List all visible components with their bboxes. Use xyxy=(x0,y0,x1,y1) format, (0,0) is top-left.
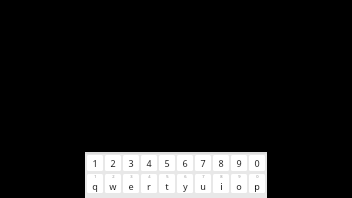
staticText: 7 xyxy=(202,174,205,179)
staticText: 3 xyxy=(128,157,134,169)
staticText: 2 xyxy=(110,157,116,169)
staticText: 8 xyxy=(220,174,223,179)
staticText: 7 xyxy=(200,157,206,169)
staticText: 6 xyxy=(182,157,188,169)
staticText: 5 xyxy=(166,174,169,179)
staticText: 9 xyxy=(236,157,242,169)
button[interactable]: e xyxy=(123,174,139,193)
staticText: r xyxy=(147,180,151,192)
staticText: y xyxy=(183,180,188,192)
button[interactable]: u xyxy=(195,174,211,193)
staticText: 2 xyxy=(112,174,115,179)
button[interactable]: r xyxy=(141,174,157,193)
staticText: 3 xyxy=(130,174,133,179)
button[interactable]: t xyxy=(159,174,175,193)
staticText: 6 xyxy=(184,174,187,179)
staticText: 0 xyxy=(254,157,260,169)
staticText: w xyxy=(109,180,117,192)
staticText: 4 xyxy=(146,157,152,169)
button[interactable]: i xyxy=(213,174,229,193)
button[interactable]: 8 xyxy=(213,155,229,171)
button[interactable]: 5 xyxy=(159,155,175,171)
staticText: t xyxy=(165,180,169,192)
staticText: p xyxy=(254,180,260,192)
staticText: i xyxy=(220,180,223,192)
staticText: q xyxy=(92,180,98,192)
button[interactable]: y xyxy=(177,174,193,193)
button[interactable]: 1 xyxy=(87,155,103,171)
button[interactable]: 9 xyxy=(231,155,247,171)
button[interactable]: o xyxy=(231,174,247,193)
button[interactable]: 7 xyxy=(195,155,211,171)
button[interactable]: q xyxy=(87,174,103,193)
staticText: 9 xyxy=(238,174,241,179)
staticText: 1 xyxy=(92,157,98,169)
staticText: o xyxy=(236,180,242,192)
staticText: 4 xyxy=(148,174,151,179)
staticText: u xyxy=(200,180,206,192)
button[interactable]: 3 xyxy=(123,155,139,171)
button[interactable]: 2 xyxy=(105,155,121,171)
staticText: 8 xyxy=(218,157,224,169)
staticText: 1 xyxy=(94,174,97,179)
button[interactable]: p xyxy=(249,174,265,193)
staticText: e xyxy=(128,180,134,192)
button[interactable]: 4 xyxy=(141,155,157,171)
button[interactable]: w xyxy=(105,174,121,193)
button[interactable]: 6 xyxy=(177,155,193,171)
staticText: 5 xyxy=(164,157,170,169)
button[interactable]: 0 xyxy=(249,155,265,171)
staticText: 0 xyxy=(256,174,259,179)
